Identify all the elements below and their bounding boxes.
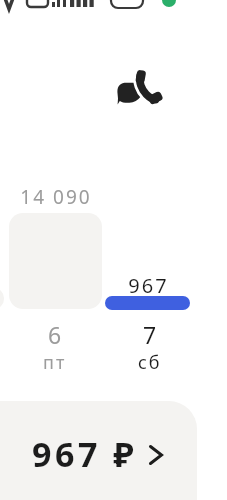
staticText: сб [138,350,162,375]
staticText: 967 [105,272,192,299]
button[interactable]: 967 ₽ [0,0,227,500]
staticText: 967 ₽ [32,431,138,477]
staticText: пт [43,350,67,375]
staticText: 6 [48,319,62,350]
button[interactable]: Call [117,69,161,105]
staticText: 14 090 [9,184,103,210]
staticText: 7 [143,319,157,350]
